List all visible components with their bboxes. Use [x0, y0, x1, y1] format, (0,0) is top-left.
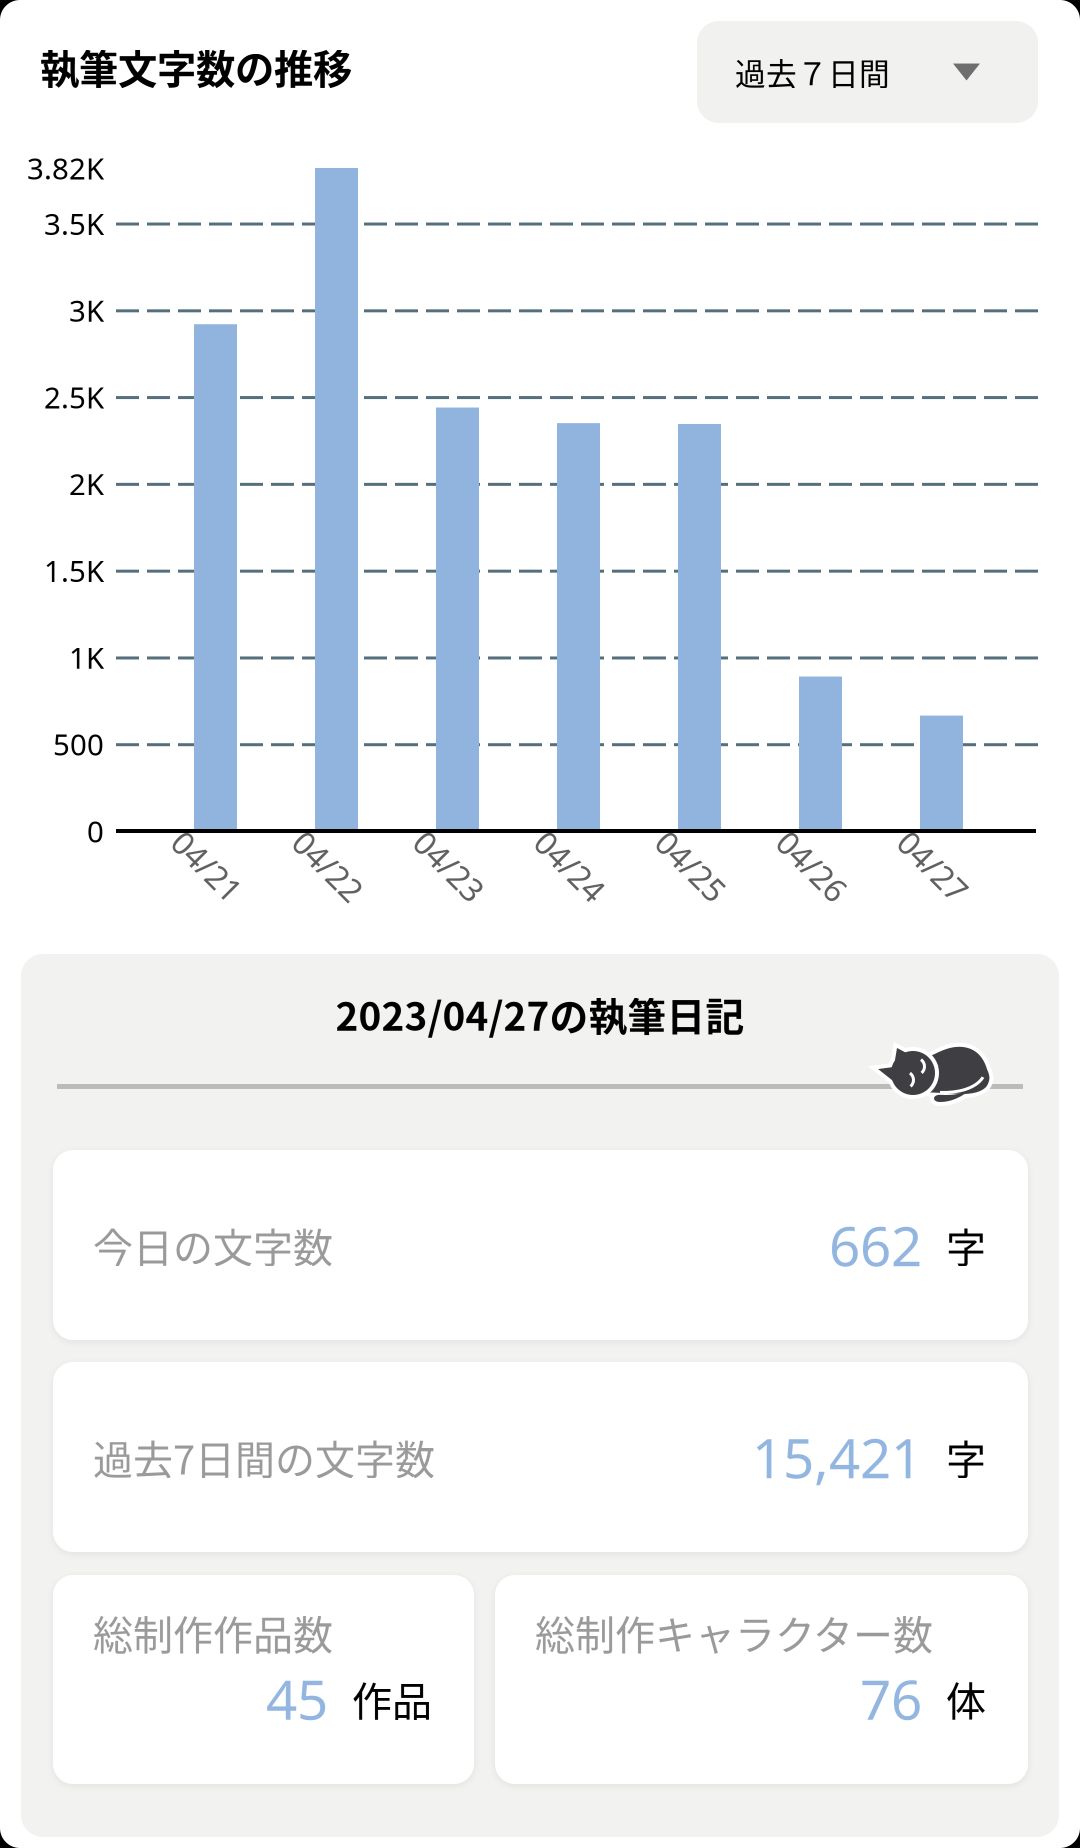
staticText: 2023/04/27の執筆日記 [335, 986, 744, 1042]
staticText: 04/21 [165, 844, 249, 888]
staticText: 15,421 [752, 1420, 922, 1494]
staticText: 04/24 [528, 844, 612, 888]
staticText: 04/27 [891, 844, 975, 888]
staticText: 76 [860, 1661, 922, 1736]
staticText: 0 [87, 811, 104, 851]
staticText: 04/23 [407, 844, 491, 888]
staticText: 1K [69, 637, 104, 677]
staticText: 2K [69, 464, 104, 504]
staticText: 総制作作品数 [93, 1603, 333, 1661]
staticText: 1.5K [44, 551, 104, 591]
staticText: 過去７日間 [735, 50, 890, 94]
staticText: 3.5K [44, 204, 104, 244]
staticText: 3K [69, 290, 104, 330]
button[interactable]: 過去7日間の文字数 [53, 1362, 1028, 1552]
button[interactable]: 過去７日間 [697, 21, 1038, 123]
button[interactable]: 総制作作品数 [53, 1575, 474, 1784]
staticText: 字 [946, 1216, 986, 1274]
staticText: 体 [946, 1669, 986, 1727]
button[interactable]: 総制作キャラクター数 [495, 1575, 1028, 1784]
staticText: 作品 [352, 1669, 432, 1727]
staticText: 過去7日間の文字数 [93, 1428, 435, 1486]
staticText: 500 [53, 724, 104, 764]
staticText: 今日の文字数 [93, 1216, 333, 1274]
staticText: 04/25 [649, 844, 733, 888]
staticText: 執筆文字数の推移 [40, 38, 352, 95]
staticText: 662 [829, 1208, 922, 1282]
staticText: 総制作キャラクター数 [535, 1603, 933, 1661]
staticText: 04/26 [770, 844, 854, 888]
button[interactable]: 今日の文字数 [53, 1150, 1028, 1340]
staticText: 3.82K [27, 148, 104, 188]
staticText: 2.5K [44, 377, 104, 417]
staticText: 字 [946, 1428, 986, 1486]
staticText: 04/22 [286, 844, 370, 888]
staticText: 45 [266, 1661, 328, 1736]
